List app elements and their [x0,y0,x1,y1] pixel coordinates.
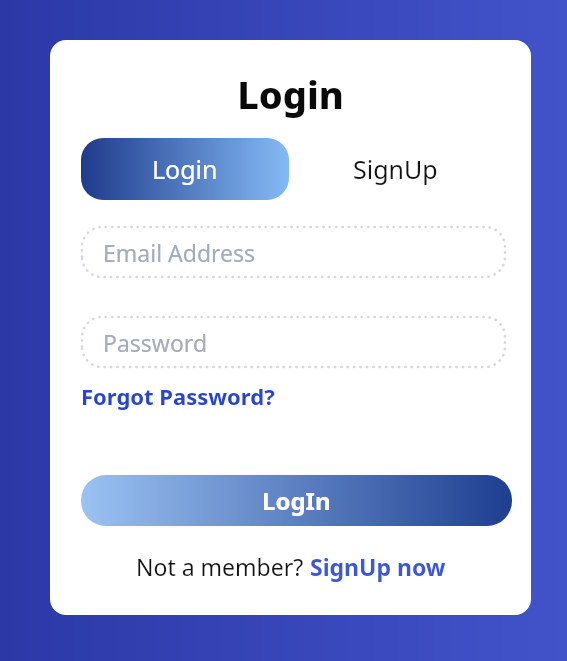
button[interactable]: LogIn [81,475,512,526]
staticText: LogIn [262,484,331,517]
button[interactable]: Forgot Password? [81,381,275,411]
staticText: Password [103,327,208,358]
button[interactable]: Login [81,138,289,200]
staticText: SignUp [353,152,438,186]
button[interactable]: SignUp [290,138,501,200]
button[interactable]: SignUp now [310,551,446,582]
staticText: Email Address [103,237,256,268]
staticText: Login [50,68,531,120]
button[interactable]: Password [81,316,506,368]
staticText: Login [152,152,218,186]
staticText: Not a member? [136,551,310,582]
button[interactable]: Email Address [81,226,506,278]
